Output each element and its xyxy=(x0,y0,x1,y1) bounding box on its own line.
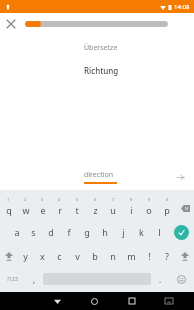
staticText: 5 xyxy=(76,197,79,202)
staticText: g xyxy=(84,226,90,238)
staticText: l xyxy=(158,226,161,238)
staticText: 2 xyxy=(24,197,27,202)
button[interactable]: Emoji xyxy=(169,268,194,290)
button[interactable]: Next xyxy=(172,169,188,185)
button[interactable]: 8 xyxy=(122,196,140,220)
staticText: s xyxy=(31,226,36,238)
staticText: z xyxy=(93,204,98,216)
staticText: Übersetze xyxy=(84,43,118,53)
staticText: d xyxy=(48,226,54,238)
button[interactable]: . xyxy=(151,268,169,290)
button[interactable]: 1 xyxy=(0,196,17,220)
staticText: ? xyxy=(165,250,169,262)
staticText: w xyxy=(22,204,30,216)
button[interactable]: k xyxy=(132,220,150,244)
staticText: 9 xyxy=(148,197,151,202)
staticText: m xyxy=(127,250,136,262)
button[interactable]: d xyxy=(42,220,60,244)
button[interactable]: l xyxy=(150,220,168,244)
staticText: b xyxy=(92,250,98,262)
button[interactable]: 6 xyxy=(86,196,104,220)
button[interactable]: 9 xyxy=(140,196,158,220)
button[interactable]: 5 xyxy=(68,196,86,220)
button[interactable]: Keyboard xyxy=(150,292,187,310)
button[interactable]: f xyxy=(60,220,78,244)
staticText: c xyxy=(57,250,62,262)
staticText: o xyxy=(146,204,152,216)
button[interactable]: c xyxy=(51,244,68,268)
button[interactable]: b xyxy=(86,244,104,268)
staticText: n xyxy=(110,250,116,262)
staticText: k xyxy=(139,226,144,238)
staticText: e xyxy=(40,204,46,216)
button[interactable]: ?123 xyxy=(0,268,25,290)
staticText: 4 xyxy=(58,197,61,202)
button[interactable]: v xyxy=(68,244,86,268)
button[interactable]: Close xyxy=(0,13,22,35)
staticText: 6 xyxy=(94,197,97,202)
staticText: ! xyxy=(148,250,151,262)
staticText: u xyxy=(110,204,116,216)
staticText: q xyxy=(6,204,12,216)
staticText: 7 xyxy=(112,197,115,202)
button[interactable]: m xyxy=(122,244,140,268)
button[interactable]: direction xyxy=(84,170,117,184)
staticText: p xyxy=(164,204,170,216)
staticText: i xyxy=(130,204,133,216)
staticText: h xyxy=(102,226,108,238)
staticText: . xyxy=(159,274,162,285)
button[interactable]: ! xyxy=(140,244,158,268)
button[interactable]: ? xyxy=(158,244,176,268)
staticText: y xyxy=(23,250,28,262)
button[interactable]: x xyxy=(34,244,51,268)
staticText: x xyxy=(40,250,45,262)
staticText: Richtung xyxy=(84,65,119,76)
staticText: 1 xyxy=(7,197,10,202)
button[interactable]: a xyxy=(8,220,25,244)
button[interactable]: Shift xyxy=(176,244,194,268)
button[interactable]: Recent apps xyxy=(113,292,150,310)
button[interactable]: s xyxy=(25,220,42,244)
staticText: f xyxy=(67,226,71,238)
button[interactable]: n xyxy=(104,244,122,268)
button[interactable]: Backspace xyxy=(176,196,194,220)
button[interactable]: Home xyxy=(76,292,113,310)
button[interactable]: 3 xyxy=(34,196,51,220)
button[interactable]: Back xyxy=(39,292,76,310)
staticText: 0 xyxy=(166,197,169,202)
button[interactable]: Shift xyxy=(0,244,17,268)
staticText: r xyxy=(58,204,62,216)
staticText: 8 xyxy=(130,197,133,202)
staticText: j xyxy=(122,226,125,238)
button[interactable]: , xyxy=(25,268,43,290)
button[interactable]: 4 xyxy=(51,196,68,220)
staticText: , xyxy=(33,274,36,285)
button[interactable]: g xyxy=(78,220,96,244)
button[interactable]: 2 xyxy=(17,196,34,220)
button[interactable]: Enter xyxy=(168,220,194,244)
staticText: a xyxy=(14,226,20,238)
staticText: v xyxy=(75,250,80,262)
button[interactable]: 7 xyxy=(104,196,122,220)
staticText: 14:08 xyxy=(174,3,190,11)
staticText: direction xyxy=(84,170,114,180)
staticText: ?123 xyxy=(7,276,18,283)
button[interactable]: 0 xyxy=(158,196,176,220)
button[interactable]: y xyxy=(17,244,34,268)
button[interactable]: h xyxy=(96,220,114,244)
staticText: t xyxy=(75,204,79,216)
staticText: 3 xyxy=(41,197,44,202)
button[interactable]: j xyxy=(114,220,132,244)
